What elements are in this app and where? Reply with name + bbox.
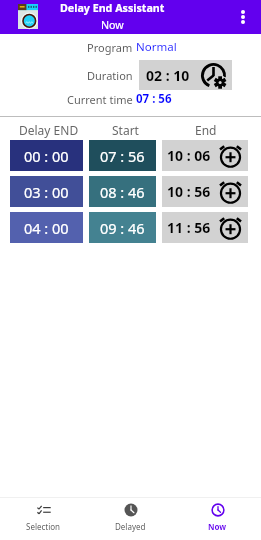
staticText: 07 : 56 <box>136 91 172 107</box>
button[interactable]: 00 : 00 <box>10 140 83 171</box>
staticText: 04 : 00 <box>24 218 69 238</box>
staticText: Now <box>101 18 124 33</box>
staticText: Delayed <box>115 521 146 532</box>
button[interactable]: More options <box>230 0 256 34</box>
staticText: Current time <box>67 92 133 107</box>
button[interactable]: 03 : 00 <box>10 176 83 207</box>
staticText: Start <box>112 122 139 138</box>
staticText: Normal <box>136 39 177 55</box>
staticText: 07 : 56 <box>100 146 145 166</box>
button[interactable]: 08 : 46 <box>89 176 156 207</box>
button[interactable]: Now <box>174 498 261 540</box>
button[interactable]: 11 : 56 <box>162 212 248 243</box>
staticText: End <box>195 122 217 138</box>
staticText: 11 : 56 <box>167 218 211 237</box>
staticText: Delay END <box>19 122 79 138</box>
staticText: Program <box>87 40 133 55</box>
button[interactable]: 02 : 10 <box>139 60 232 90</box>
staticText: 03 : 00 <box>24 182 69 202</box>
button[interactable]: Delayed <box>87 498 174 540</box>
button[interactable]: 10 : 06 <box>162 140 248 171</box>
staticText: 10 : 56 <box>167 182 211 201</box>
staticText: Selection <box>26 521 61 532</box>
button[interactable]: 10 : 56 <box>162 176 248 207</box>
button[interactable]: Selection <box>0 498 87 540</box>
staticText: 08 : 46 <box>100 182 145 202</box>
staticText: 10 : 06 <box>167 146 211 165</box>
staticText: Duration <box>87 68 133 83</box>
staticText: 09 : 46 <box>100 218 145 238</box>
button[interactable]: 07 : 56 <box>89 140 156 171</box>
staticText: 02 : 10 <box>146 66 190 85</box>
button[interactable]: 09 : 46 <box>89 212 156 243</box>
button[interactable]: 04 : 00 <box>10 212 83 243</box>
staticText: Now <box>208 521 227 532</box>
staticText: Delay End Assistant <box>60 1 165 16</box>
staticText: 00 : 00 <box>24 146 69 166</box>
